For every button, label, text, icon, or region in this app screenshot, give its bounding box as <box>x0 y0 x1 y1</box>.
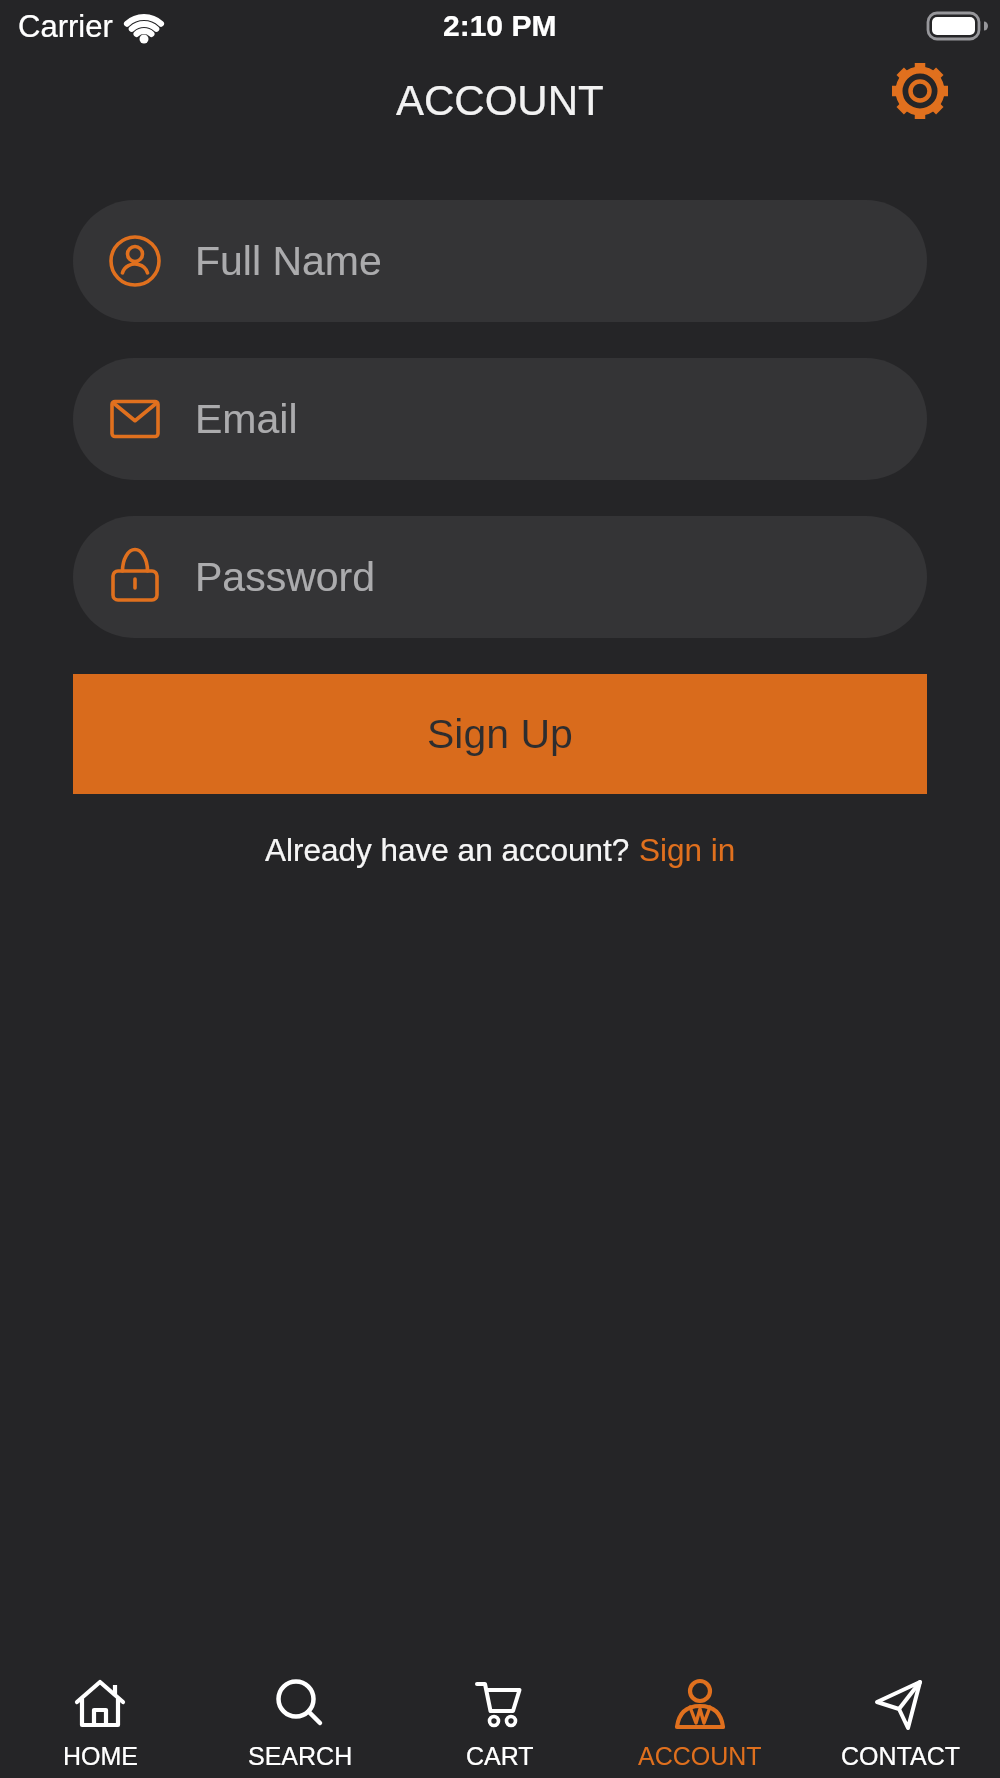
staticText: 2:10 PM <box>443 9 557 43</box>
button[interactable]: Full Name <box>73 200 927 322</box>
staticText: SEARCH <box>248 1742 353 1770</box>
staticText: Password <box>195 554 376 600</box>
staticText: ACCOUNT <box>396 77 604 124</box>
staticText: Sign Up <box>427 711 573 757</box>
button[interactable]: CONTACT <box>800 1660 1000 1778</box>
button[interactable]: ACCOUNT <box>600 1660 800 1778</box>
button[interactable]: CART <box>400 1660 600 1778</box>
button[interactable] <box>890 61 950 121</box>
staticText: Already have an account? <box>265 832 639 867</box>
staticText: Carrier <box>18 9 113 44</box>
staticText: HOME <box>63 1742 138 1770</box>
staticText: ACCOUNT <box>638 1742 762 1770</box>
button[interactable]: Password <box>73 516 927 638</box>
button[interactable]: SEARCH <box>200 1660 400 1778</box>
staticText: CART <box>466 1742 534 1770</box>
button[interactable]: Sign in <box>639 832 736 867</box>
staticText: Email <box>195 396 298 442</box>
button[interactable]: HOME <box>0 1660 200 1778</box>
button[interactable]: Sign Up <box>73 674 927 794</box>
button[interactable]: Email <box>73 358 927 480</box>
staticText: Sign in <box>639 832 736 867</box>
staticText: Full Name <box>195 238 382 284</box>
staticText: CONTACT <box>841 1742 960 1770</box>
